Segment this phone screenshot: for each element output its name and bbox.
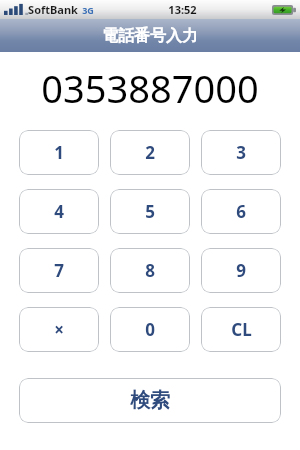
staticText: 5	[145, 200, 155, 223]
button[interactable]: 4	[19, 189, 99, 234]
staticText: 3G	[82, 4, 94, 16]
staticText: 6	[236, 200, 246, 223]
staticText: ×	[54, 318, 64, 341]
staticText: SoftBank	[28, 2, 78, 17]
button[interactable]: ×	[19, 307, 99, 352]
staticText: 0353887000	[41, 62, 259, 114]
staticText: 9	[236, 259, 246, 282]
button[interactable]: 検索	[19, 378, 281, 423]
staticText: 8	[145, 259, 155, 282]
button[interactable]: 6	[201, 189, 281, 234]
staticText: 3	[236, 141, 246, 164]
button[interactable]: 9	[201, 248, 281, 293]
button[interactable]: 3	[201, 130, 281, 175]
button[interactable]: 1	[19, 130, 99, 175]
staticText: 7	[54, 259, 64, 282]
staticText: 13:52	[168, 2, 197, 17]
button[interactable]: 7	[19, 248, 99, 293]
staticText: 4	[54, 200, 64, 223]
staticText: 2	[145, 141, 155, 164]
button[interactable]: 2	[110, 130, 190, 175]
button[interactable]: 8	[110, 248, 190, 293]
staticText: 1	[54, 141, 64, 164]
button[interactable]: CL	[201, 307, 281, 352]
button[interactable]: 0	[110, 307, 190, 352]
staticText: 検索	[130, 388, 170, 413]
staticText: CL	[231, 318, 252, 341]
button[interactable]: 5	[110, 189, 190, 234]
staticText: 電話番号入力	[102, 26, 198, 46]
staticText: 0	[145, 318, 155, 341]
